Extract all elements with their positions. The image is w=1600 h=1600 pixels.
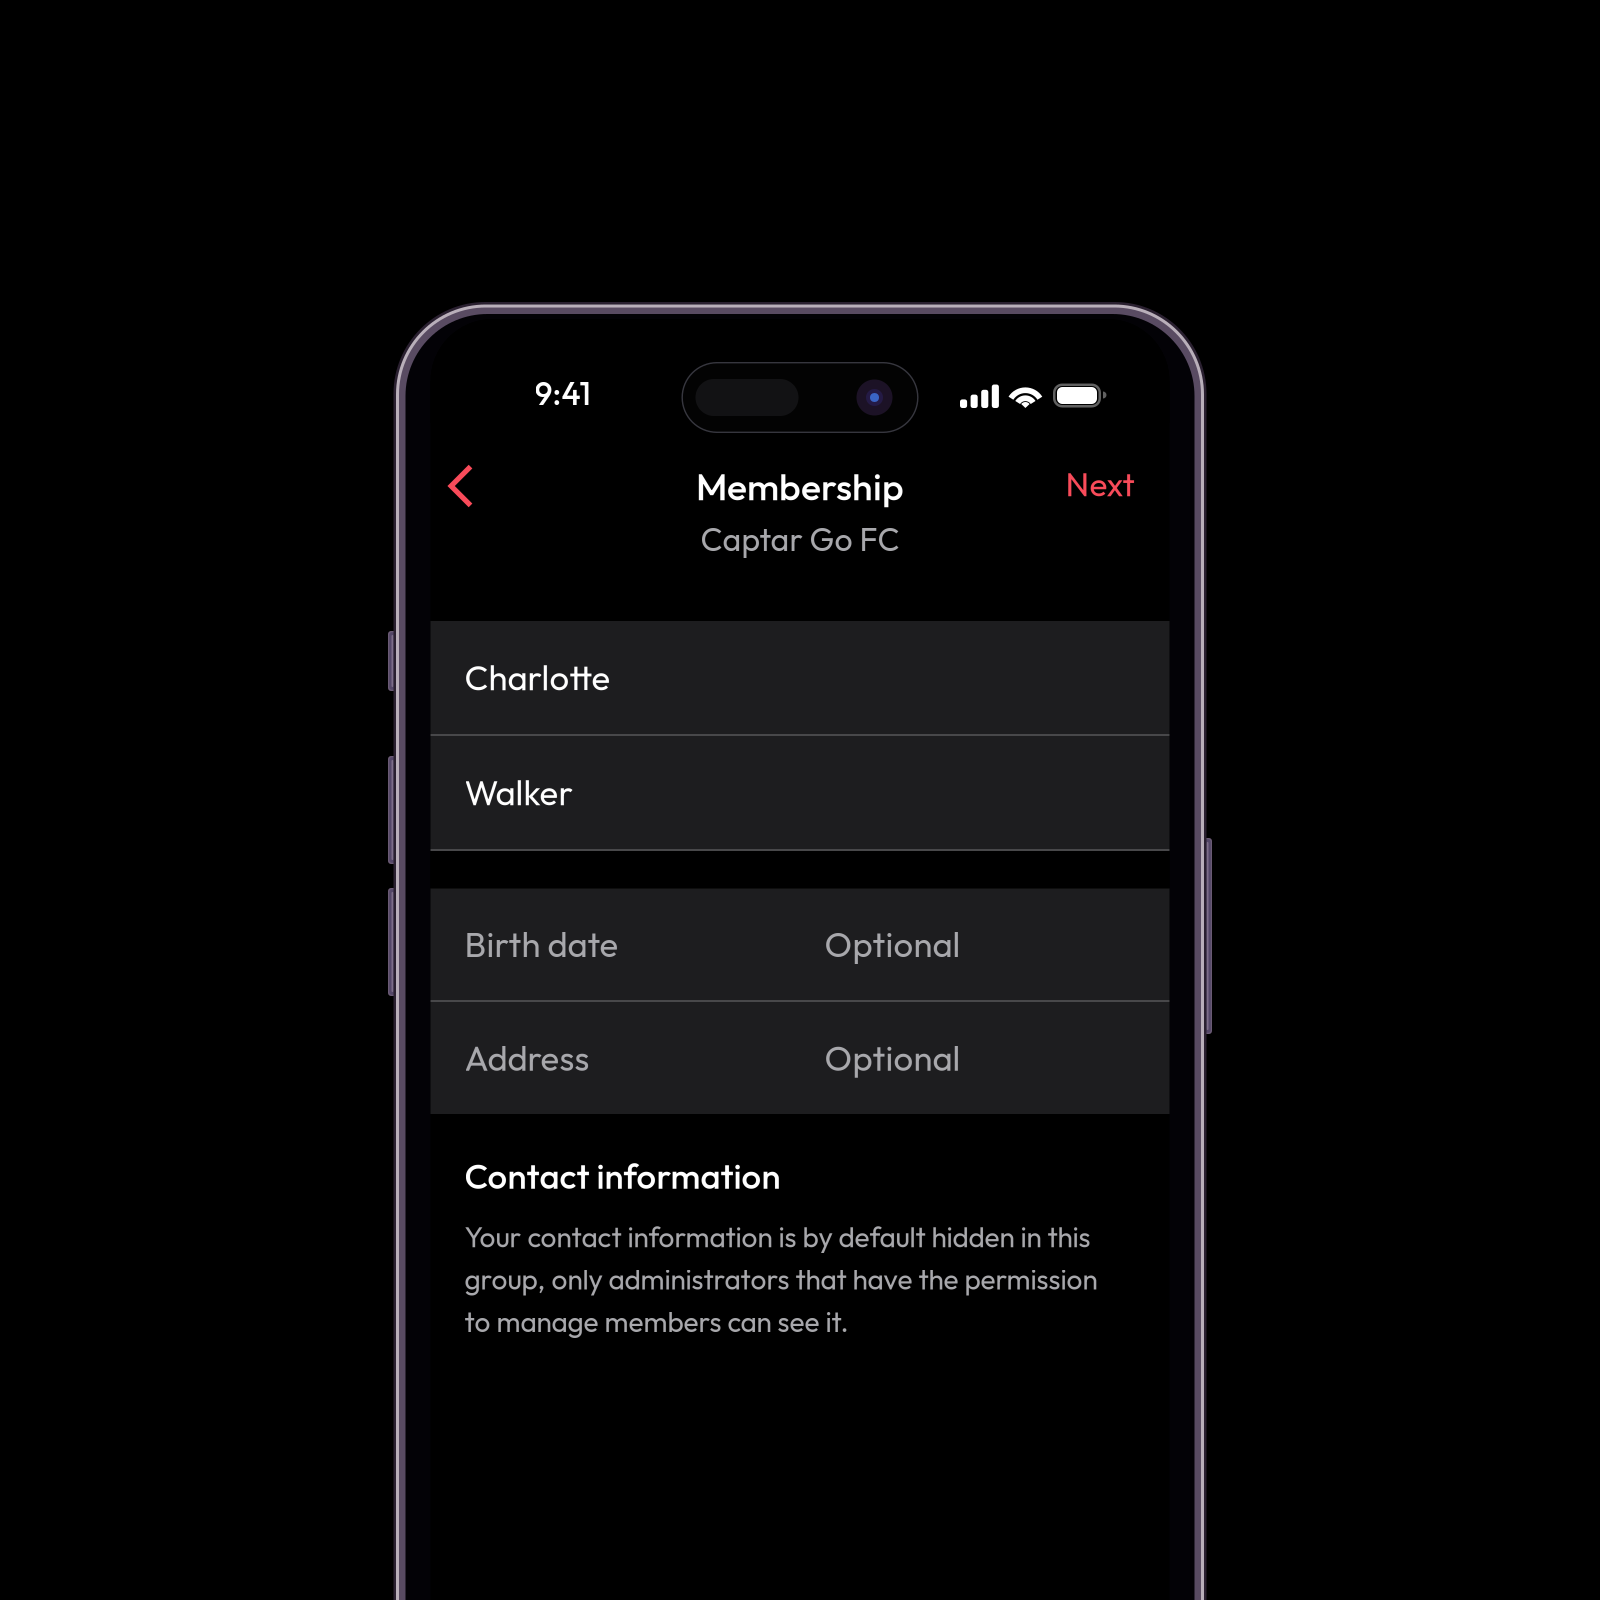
staticText: Captar Go FC: [700, 519, 899, 559]
staticText: Birth date: [464, 922, 618, 966]
staticText: 9:41: [534, 373, 590, 413]
staticText: Charlotte: [464, 656, 610, 699]
staticText: Contact information: [464, 1154, 780, 1198]
button[interactable]: Walker: [430, 736, 1169, 849]
staticText: Optional: [824, 1036, 960, 1080]
staticText: Walker: [464, 771, 573, 814]
button[interactable]: Charlotte: [430, 621, 1169, 734]
staticText: Address: [464, 1036, 589, 1080]
staticText: Optional: [824, 922, 960, 966]
button[interactable]: Back: [430, 429, 501, 530]
staticText: Your contact information is by default h…: [464, 1216, 1097, 1343]
button[interactable]: Birth date: [430, 888, 1169, 1000]
staticText: Next: [1065, 463, 1134, 505]
button[interactable]: Address: [430, 1002, 1169, 1114]
staticText: Membership: [696, 463, 904, 510]
button[interactable]: Next: [1037, 423, 1169, 536]
